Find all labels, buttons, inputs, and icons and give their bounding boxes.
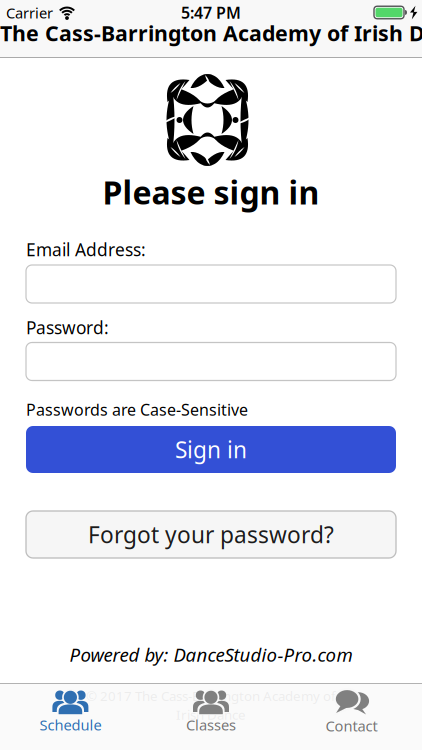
button[interactable]: Schedule (0, 684, 141, 750)
staticText: Powered by: DanceStudio-Pro.com (69, 642, 352, 667)
button[interactable]: Contact (281, 684, 422, 750)
staticText: © 2017 The Cass-Barrington Academy of (86, 687, 336, 705)
button[interactable]: Forgot your password? (26, 511, 396, 558)
staticText: The Cass-Barrington Academy of Irish Dan… (0, 19, 422, 47)
button[interactable]: Classes (141, 684, 281, 750)
staticText: 5:47 PM (181, 2, 241, 23)
staticText: Sign in (175, 434, 247, 464)
staticText: Email Address: (26, 238, 146, 261)
staticText: Password: (26, 316, 109, 339)
staticText: Contact (326, 716, 378, 735)
staticText: Classes (186, 715, 236, 734)
button[interactable]: Sign in (26, 426, 396, 473)
staticText: Forgot your password? (88, 519, 334, 549)
staticText: Irish Dance (176, 706, 246, 723)
staticText: Passwords are Case-Sensitive (26, 399, 248, 420)
staticText: Carrier (6, 3, 53, 22)
staticText: Schedule (39, 715, 101, 734)
staticText: Please sign in (102, 171, 319, 213)
